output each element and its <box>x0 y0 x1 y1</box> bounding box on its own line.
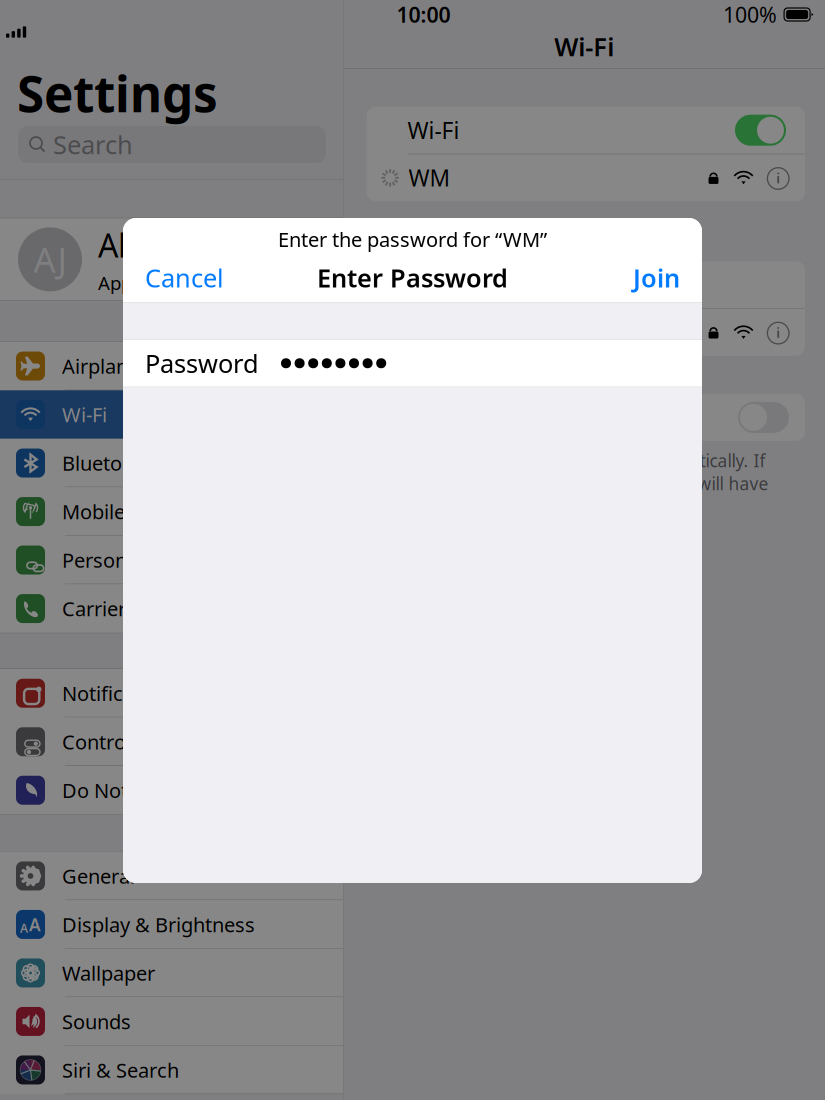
staticText: Airplane Mode <box>62 353 197 379</box>
button[interactable]: Siri & Search <box>0 1046 343 1094</box>
button[interactable]: Personal Hotspot <box>0 536 343 584</box>
staticText: A <box>29 913 41 936</box>
staticText: Display & Brightness <box>62 911 255 938</box>
button[interactable]: Cancel <box>123 256 236 300</box>
staticText: Search <box>53 128 133 161</box>
staticText: Bluetooth <box>62 450 153 476</box>
staticText: Wi-Fi <box>408 115 460 145</box>
staticText: Do Not Disturb <box>62 777 202 804</box>
button[interactable]: Bluetooth <box>0 439 343 487</box>
staticText: 10:00 <box>397 0 451 29</box>
staticText: General <box>62 863 135 889</box>
staticText: Wallpaper <box>62 960 155 986</box>
staticText: Settings <box>17 60 218 126</box>
button[interactable]: Join <box>621 256 702 300</box>
staticText: Carrier <box>62 595 126 622</box>
staticText: Siri & Search <box>62 1057 179 1083</box>
staticText: AJ <box>33 236 66 282</box>
staticText: Join <box>633 261 680 294</box>
button[interactable]: Carrier <box>0 584 343 633</box>
staticText: Enter the password for “WM” <box>278 226 547 253</box>
staticText: Wi-Fi <box>62 401 107 428</box>
button[interactable]: Wi-Fi on <box>735 115 786 146</box>
staticText: Notifications <box>62 680 180 707</box>
button[interactable]: AJ <box>0 218 343 300</box>
button[interactable]: Airplane Mode <box>0 342 343 390</box>
staticText: WM <box>409 163 451 193</box>
button[interactable]: Do Not Disturb <box>0 766 343 814</box>
button[interactable]: Wi-Fi <box>0 390 343 439</box>
button[interactable]: Sounds <box>0 997 343 1046</box>
button[interactable]: BTWifi-X <box>367 309 805 356</box>
staticText: Cancel <box>145 261 224 294</box>
staticText: Control Centre <box>62 728 198 755</box>
staticText: Wi-Fi <box>554 30 614 63</box>
staticText: BTWifi-X <box>383 317 472 347</box>
button[interactable]: Notifications <box>0 669 343 717</box>
staticText: A <box>20 920 28 936</box>
staticText: Choose a Network... <box>383 270 597 300</box>
staticText: Mobile Data <box>62 498 174 525</box>
staticText: Sounds <box>62 1008 131 1035</box>
button[interactable]: WM <box>367 154 805 201</box>
button[interactable]: A <box>0 900 343 949</box>
staticText: Personal Hotspot <box>62 547 223 573</box>
staticText: 100% <box>723 0 777 29</box>
staticText: Alan Jones <box>98 224 253 266</box>
button[interactable]: Ask to Join Networks <box>738 402 789 433</box>
button[interactable]: General <box>0 852 343 900</box>
staticText: Enter Password <box>317 261 508 294</box>
staticText: Known networks will be joined automatica… <box>383 449 769 518</box>
button[interactable]: Mobile Data <box>0 487 343 536</box>
button[interactable]: Control Centre <box>0 717 343 766</box>
button[interactable]: Wallpaper <box>0 949 343 997</box>
staticText: Apple ID, iCloud, iTunes & App Store <box>98 270 343 295</box>
staticText: Password <box>145 346 259 380</box>
